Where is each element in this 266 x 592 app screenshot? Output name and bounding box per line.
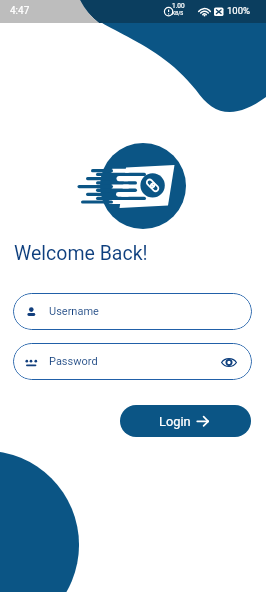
button[interactable]: Show password — [219, 352, 239, 372]
staticText: KB/S — [172, 10, 184, 16]
button[interactable]: Password — [13, 343, 252, 380]
staticText: 100% — [227, 5, 250, 16]
staticText: 4:47 — [10, 5, 30, 17]
staticText: Welcome Back! — [14, 242, 148, 265]
button[interactable]: Username — [13, 293, 252, 330]
staticText: Username — [49, 305, 99, 318]
button[interactable]: Login — [120, 405, 251, 437]
staticText: Login — [159, 414, 191, 429]
staticText: Password — [49, 355, 98, 368]
staticText: 1.00 — [172, 2, 185, 10]
